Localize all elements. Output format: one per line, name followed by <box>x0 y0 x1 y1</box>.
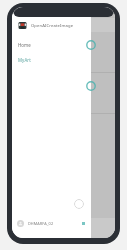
button[interactable]: Account options <box>81 221 86 226</box>
button[interactable]: Create image <box>74 199 84 209</box>
staticText: Home <box>18 42 31 48</box>
button[interactable]: OpenAICreateImage <box>12 19 91 32</box>
button[interactable]: MyArt <box>12 55 91 65</box>
staticText: MyArt <box>18 57 31 63</box>
staticText: DHMARFA_02 <box>28 221 54 226</box>
staticText: OpenAICreateImage <box>31 23 74 29</box>
button[interactable] <box>91 7 115 238</box>
button[interactable]: Home <box>12 40 91 50</box>
button[interactable]: DHMARFA_02 <box>12 218 91 229</box>
